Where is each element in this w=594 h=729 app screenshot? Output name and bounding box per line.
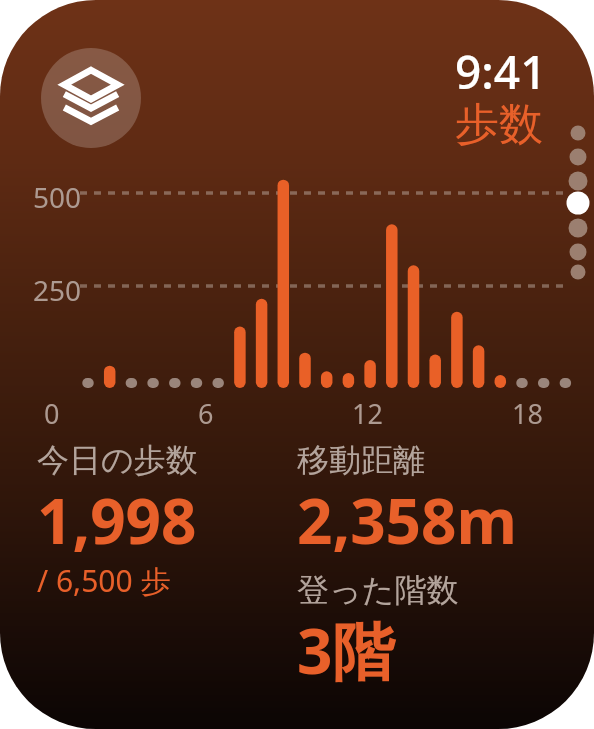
staticText: 2,358m [297,478,517,562]
staticText: 登った階数 [297,570,459,610]
staticText: 9:41 [455,40,547,103]
staticText: 移動距離 [297,440,425,480]
staticText: 12 [352,395,383,432]
button[interactable]: Layers [41,48,141,148]
staticText: 歩数 [455,97,543,152]
staticText: 1,998 [37,478,197,562]
staticText: 今日の歩数 [37,440,198,480]
staticText: 250 [33,271,82,309]
staticText: 3階 [297,608,395,693]
staticText: 18 [512,395,543,432]
staticText: 6 [198,395,214,432]
button[interactable]: 移動距離 [297,440,517,564]
staticText: / 6,500 歩 [37,560,171,601]
staticText: 500 [33,178,82,216]
button[interactable]: 今日の歩数 [37,440,198,605]
staticText: 0 [44,395,60,432]
button[interactable]: 登った階数 [297,570,459,695]
